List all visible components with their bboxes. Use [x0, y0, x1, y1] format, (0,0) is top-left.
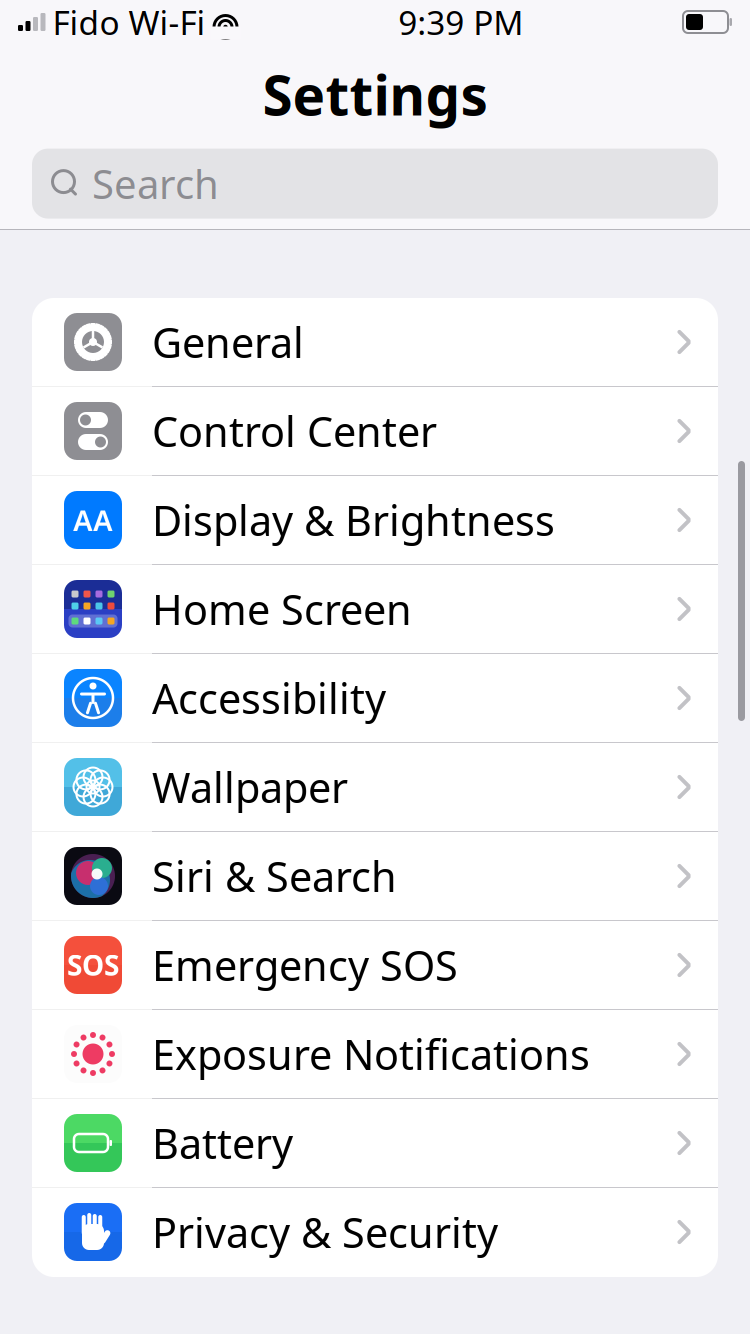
- staticText: Privacy & Security: [152, 1205, 498, 1259]
- button[interactable]: Wallpaper: [32, 743, 718, 832]
- button[interactable]: General: [32, 298, 718, 387]
- button[interactable]: AA: [32, 476, 718, 565]
- button[interactable]: SOS: [32, 921, 718, 1010]
- staticText: SOS: [67, 946, 119, 984]
- button[interactable]: Accessibility: [32, 654, 718, 743]
- button[interactable]: Privacy & Security: [32, 1188, 718, 1277]
- button[interactable]: Siri & Search: [32, 832, 718, 921]
- staticText: Exposure Notifications: [152, 1027, 590, 1081]
- staticText: Battery: [152, 1116, 293, 1170]
- staticText: Display & Brightness: [152, 493, 555, 547]
- staticText: Control Center: [152, 404, 437, 458]
- staticText: Home Screen: [152, 582, 412, 636]
- button[interactable]: Battery: [32, 1099, 718, 1188]
- staticText: Emergency SOS: [152, 938, 458, 992]
- staticText: Search: [92, 157, 219, 210]
- staticText: Siri & Search: [152, 849, 397, 903]
- button[interactable]: Control Center: [32, 387, 718, 476]
- button[interactable]: Home Screen: [32, 565, 718, 654]
- button[interactable]: Search: [32, 149, 718, 219]
- staticText: Wallpaper: [152, 760, 348, 814]
- staticText: Fido Wi-Fi: [52, 0, 205, 44]
- staticText: Accessibility: [152, 671, 386, 725]
- staticText: 9:39 PM: [398, 0, 523, 44]
- button[interactable]: Exposure Notifications: [32, 1010, 718, 1099]
- staticText: General: [152, 315, 304, 369]
- staticText: Settings: [262, 58, 487, 131]
- staticText: AA: [73, 500, 113, 539]
